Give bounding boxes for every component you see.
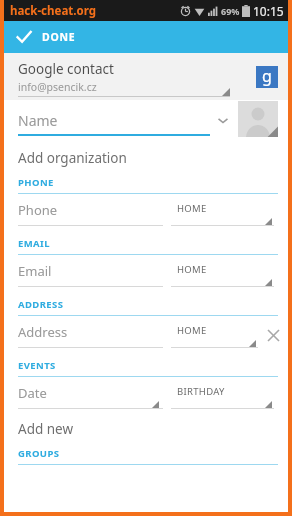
staticText: Google contact bbox=[18, 60, 114, 78]
staticText: Address bbox=[18, 323, 68, 341]
staticText: HOME bbox=[177, 263, 207, 276]
button[interactable]: Add organization bbox=[4, 144, 288, 171]
button[interactable]: Address bbox=[4, 316, 288, 354]
button[interactable]: Phone bbox=[4, 194, 288, 232]
button[interactable]: Google account bbox=[256, 66, 278, 88]
staticText: EMAIL bbox=[18, 237, 50, 250]
button[interactable]: BIRTHDAY bbox=[169, 377, 288, 415]
button[interactable]: Email bbox=[4, 255, 288, 293]
staticText: Email bbox=[18, 262, 52, 280]
button[interactable]: HOME bbox=[169, 255, 288, 293]
staticText: HOME bbox=[177, 324, 207, 337]
staticText: DONE bbox=[42, 30, 76, 44]
button[interactable]: DONE bbox=[4, 21, 288, 53]
button[interactable]: Expand name fields bbox=[216, 113, 230, 127]
staticText: info@psencik.cz bbox=[18, 80, 97, 94]
staticText: Add new bbox=[18, 420, 74, 438]
button[interactable]: HOME bbox=[169, 316, 288, 354]
button[interactable]: Add new bbox=[4, 415, 288, 442]
staticText: 69% bbox=[221, 5, 240, 17]
button[interactable]: Add photo bbox=[238, 101, 278, 137]
button[interactable]: HOME bbox=[169, 194, 288, 232]
staticText: GROUPS bbox=[18, 447, 60, 460]
staticText: 10:15 bbox=[253, 3, 284, 19]
staticText: g bbox=[262, 65, 272, 87]
staticText: EVENTS bbox=[18, 359, 56, 372]
button[interactable]: Remove address bbox=[264, 326, 282, 344]
staticText: BIRTHDAY bbox=[177, 385, 225, 398]
staticText: Name bbox=[18, 111, 58, 130]
button[interactable]: Google contact bbox=[4, 53, 288, 100]
staticText: Phone bbox=[18, 201, 58, 219]
staticText: Add organization bbox=[18, 149, 127, 167]
staticText: Date bbox=[18, 384, 47, 402]
button[interactable]: Name bbox=[4, 100, 238, 144]
staticText: HOME bbox=[177, 202, 207, 215]
staticText: PHONE bbox=[18, 176, 54, 189]
staticText: ADDRESS bbox=[18, 298, 64, 311]
staticText: hack-cheat.org bbox=[10, 3, 96, 19]
button[interactable]: Date bbox=[4, 377, 288, 415]
